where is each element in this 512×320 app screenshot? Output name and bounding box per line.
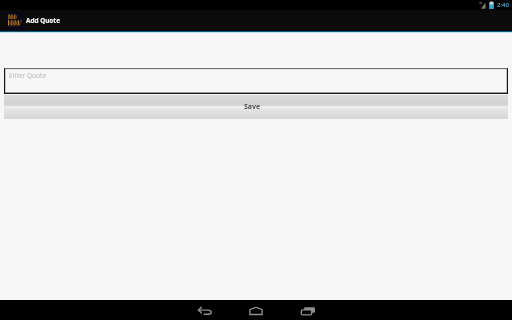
staticText: Save — [244, 102, 261, 112]
staticText: 2:40 — [497, 1, 509, 9]
button[interactable]: Enter Quote — [4, 68, 508, 94]
staticText: Add Quote — [26, 16, 60, 25]
button[interactable]: Home — [230, 300, 282, 320]
button[interactable]: Recent apps — [282, 300, 334, 320]
staticText: Enter Quote — [9, 71, 47, 80]
button[interactable]: Save — [4, 95, 508, 119]
button[interactable]: Back — [179, 300, 230, 320]
